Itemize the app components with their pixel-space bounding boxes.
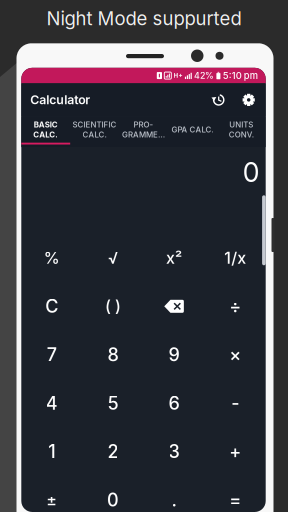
button[interactable]: Settings bbox=[238, 83, 260, 116]
button[interactable]: - bbox=[205, 379, 266, 427]
button[interactable]: 9 bbox=[143, 330, 205, 379]
button[interactable]: 1 bbox=[21, 427, 82, 476]
staticText: 7 bbox=[47, 344, 57, 366]
staticText: SCIENTIFIC bbox=[73, 120, 117, 129]
button[interactable]: PRO- bbox=[119, 116, 168, 147]
button[interactable]: C bbox=[21, 282, 82, 330]
staticText: PRO- bbox=[133, 120, 153, 129]
staticText: 5:10 pm bbox=[223, 70, 258, 81]
staticText: 1/x bbox=[224, 248, 246, 268]
staticText: ( ) bbox=[105, 297, 121, 316]
staticText: x² bbox=[166, 248, 182, 268]
staticText: 2 bbox=[107, 441, 118, 462]
button[interactable]: + bbox=[205, 427, 266, 476]
staticText: % bbox=[44, 248, 60, 268]
button[interactable]: % bbox=[21, 234, 82, 282]
staticText: C bbox=[45, 295, 58, 317]
staticText: + bbox=[229, 441, 241, 462]
button[interactable]: 2 bbox=[82, 427, 143, 476]
staticText: - bbox=[231, 392, 239, 414]
staticText: GPA CALC. bbox=[171, 125, 213, 134]
staticText: H+ bbox=[174, 72, 183, 79]
staticText: = bbox=[229, 489, 241, 511]
button[interactable]: 3 bbox=[143, 427, 205, 476]
button[interactable]: 7 bbox=[21, 330, 82, 379]
button[interactable]: ( ) bbox=[82, 282, 143, 330]
button[interactable]: = bbox=[205, 476, 266, 512]
button[interactable]: 6 bbox=[143, 379, 205, 427]
staticText: CALC. bbox=[33, 130, 58, 139]
button[interactable]: 0 bbox=[82, 476, 143, 512]
button[interactable]: . bbox=[143, 476, 205, 512]
staticText: Calculator bbox=[30, 92, 90, 107]
staticText: 4 bbox=[46, 392, 58, 414]
staticText: ÷ bbox=[229, 295, 241, 317]
button[interactable]: GPA CALC. bbox=[168, 116, 217, 147]
staticText: × bbox=[229, 344, 241, 366]
button[interactable]: √ bbox=[82, 234, 143, 282]
staticText: 6 bbox=[169, 392, 180, 414]
staticText: ± bbox=[46, 490, 57, 510]
staticText: 1 bbox=[48, 441, 55, 462]
staticText: 42% bbox=[194, 70, 214, 81]
button[interactable]: 1/x bbox=[205, 234, 266, 282]
button[interactable]: History bbox=[208, 83, 230, 116]
button[interactable]: UNITS bbox=[217, 116, 266, 147]
staticText: √ bbox=[108, 248, 118, 268]
staticText: BASIC bbox=[34, 120, 58, 129]
button[interactable]: × bbox=[205, 330, 266, 379]
button[interactable]: Backspace bbox=[143, 282, 205, 330]
staticText: CALC. bbox=[83, 130, 107, 139]
button[interactable]: 8 bbox=[82, 330, 143, 379]
button[interactable]: 5 bbox=[82, 379, 143, 427]
button[interactable]: SCIENTIFIC bbox=[70, 116, 119, 147]
staticText: 9 bbox=[169, 344, 180, 366]
button[interactable]: ÷ bbox=[205, 282, 266, 330]
button[interactable]: ± bbox=[21, 476, 82, 512]
button[interactable]: 4 bbox=[21, 379, 82, 427]
staticText: CONV. bbox=[229, 130, 254, 139]
staticText: 8 bbox=[107, 344, 118, 366]
staticText: . bbox=[172, 489, 177, 511]
staticText: 0 bbox=[243, 156, 260, 188]
staticText: 0 bbox=[107, 489, 119, 511]
staticText: 3 bbox=[169, 441, 180, 462]
staticText: Night Mode suppurted bbox=[46, 7, 241, 30]
staticText: GRAMME… bbox=[122, 130, 165, 139]
staticText: UNITS bbox=[229, 120, 253, 129]
staticText: 5 bbox=[107, 392, 118, 414]
button[interactable]: x² bbox=[143, 234, 205, 282]
button[interactable]: BASIC bbox=[21, 116, 70, 147]
